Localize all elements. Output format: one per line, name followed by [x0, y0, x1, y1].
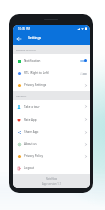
button[interactable]: Back	[13, 32, 25, 45]
staticText: Notification	[24, 59, 41, 63]
button[interactable]: Logout	[13, 162, 90, 174]
staticText: Logout	[24, 166, 34, 170]
button[interactable]: Notification	[13, 54, 90, 67]
staticText: PROFILE SETTING	[16, 48, 36, 51]
staticText: Privacy Settings	[24, 83, 47, 87]
staticText: About us	[24, 142, 37, 146]
staticText: Privacy Policy	[24, 154, 43, 158]
staticText: RateNow	[46, 177, 57, 181]
button[interactable]: Take a tour	[13, 100, 90, 113]
staticText: RTL (Right to Left)	[24, 71, 49, 75]
staticText: GENERAL	[16, 94, 27, 97]
button[interactable]: Rate App	[13, 113, 90, 126]
button[interactable]: Toggle	[80, 72, 87, 75]
button[interactable]: Privacy Policy	[13, 150, 90, 162]
button[interactable]: RTL (Right to Left)	[13, 67, 90, 79]
button[interactable]: Share App	[13, 126, 90, 138]
staticText: 10:05 PM	[18, 27, 31, 31]
staticText: Rate App	[24, 118, 37, 122]
button[interactable]: About us	[13, 138, 90, 150]
button[interactable]: Toggle	[80, 59, 87, 62]
staticText: Share App	[24, 130, 39, 134]
staticText: Take a tour	[24, 105, 40, 109]
staticText: Settings	[28, 35, 42, 40]
staticText: App version 1.1	[42, 182, 61, 186]
button[interactable]: Privacy Settings	[13, 79, 90, 91]
